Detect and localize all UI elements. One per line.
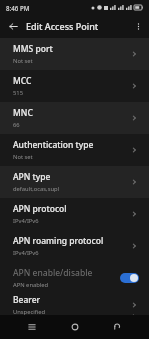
- staticText: Not set: [13, 57, 33, 65]
- button[interactable]: Home: [64, 316, 86, 338]
- staticText: Bearer: [13, 294, 41, 306]
- staticText: APN enable/disable: [13, 267, 93, 279]
- button[interactable]: Back: [106, 316, 128, 338]
- staticText: APN roaming protocol: [13, 235, 104, 247]
- staticText: Unspecified: [13, 308, 46, 315]
- button[interactable]: Bearer: [0, 294, 149, 315]
- button[interactable]: APN roaming protocol: [0, 230, 149, 262]
- staticText: APN type: [13, 171, 51, 183]
- staticText: APN protocol: [13, 203, 67, 215]
- button[interactable]: APN enable/disable: [0, 262, 149, 294]
- staticText: 515: [13, 89, 23, 97]
- staticText: IPv4/IPv6: [13, 217, 39, 225]
- button[interactable]: MMS port: [0, 38, 149, 70]
- staticText: MCC: [13, 75, 32, 87]
- button[interactable]: Back: [5, 18, 21, 34]
- button[interactable]: APN type: [0, 166, 149, 198]
- button[interactable]: APN protocol: [0, 198, 149, 230]
- staticText: APN enabled: [13, 281, 49, 289]
- staticText: Not set: [13, 153, 33, 161]
- staticText: MMS port: [13, 43, 53, 55]
- staticText: IPv4/IPv6: [13, 249, 39, 257]
- staticText: default,ocas,supl: [13, 185, 60, 193]
- button[interactable]: APN enable/disable toggle: [120, 273, 139, 283]
- button[interactable]: MCC: [0, 70, 149, 102]
- button[interactable]: Authentication type: [0, 134, 149, 166]
- staticText: 66: [13, 121, 20, 129]
- staticText: Edit Access Point: [26, 20, 99, 32]
- button[interactable]: More options: [130, 18, 146, 34]
- staticText: 8:46 PM: [6, 4, 30, 12]
- staticText: Authentication type: [13, 139, 94, 151]
- button[interactable]: MNC: [0, 102, 149, 134]
- staticText: MNC: [13, 107, 33, 119]
- button[interactable]: Recent apps: [21, 316, 43, 338]
